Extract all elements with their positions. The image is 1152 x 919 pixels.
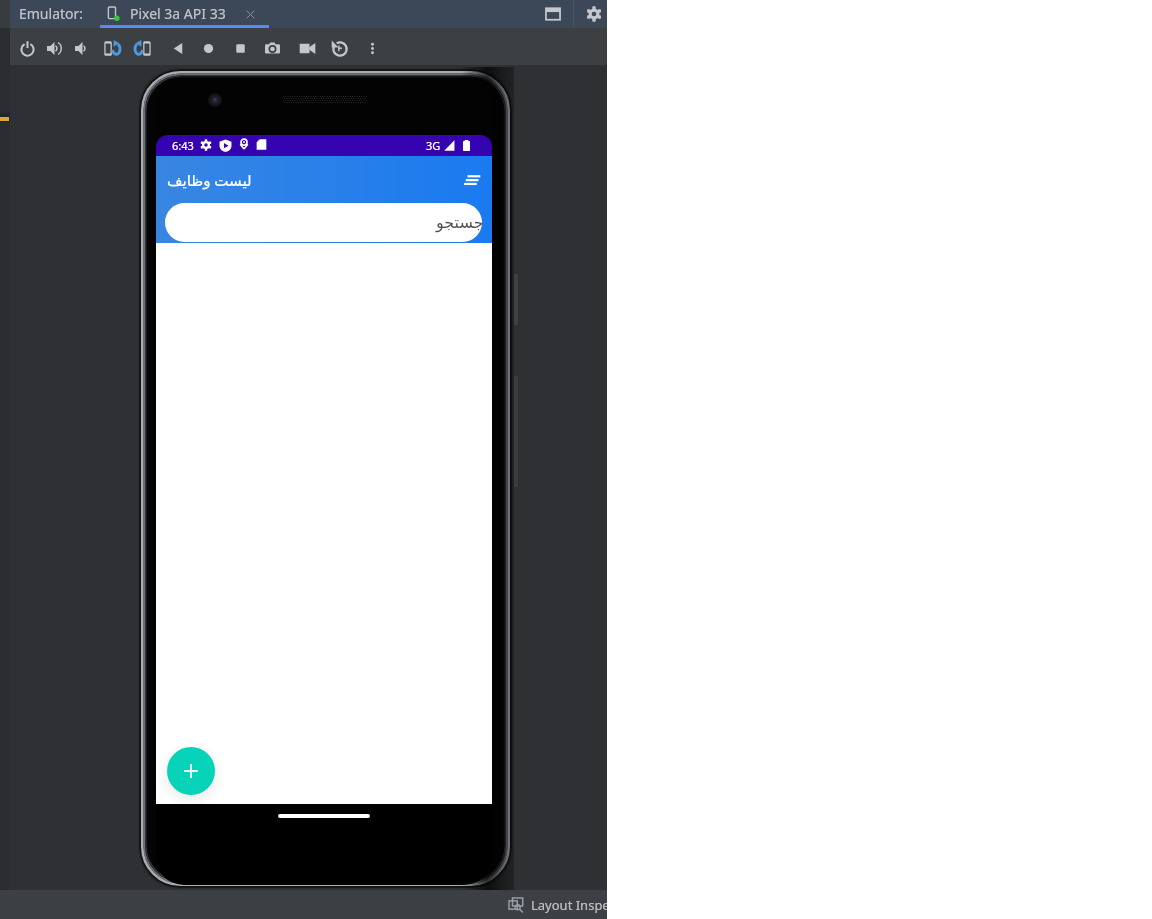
button[interactable]: Layout Inspector: [508, 894, 607, 915]
button[interactable]: لیست وظایف: [164, 162, 255, 198]
button[interactable]: Home: [195, 35, 221, 61]
staticText: 6:43: [172, 138, 194, 153]
staticText: 3G: [426, 138, 441, 153]
button[interactable]: Overview: [227, 35, 253, 61]
button[interactable]: Rotate right: [129, 35, 155, 61]
button[interactable]: Window mode: [541, 2, 565, 26]
button[interactable]: Record: [294, 35, 320, 61]
button[interactable]: More: [359, 35, 385, 61]
staticText: Pixel 3a API 33: [130, 4, 226, 23]
button[interactable]: Screenshot: [259, 35, 285, 61]
button[interactable]: Pixel 3a API 33: [90, 0, 270, 28]
button[interactable]: Rotate left: [99, 35, 125, 61]
button[interactable]: Volume down: [69, 35, 95, 61]
button[interactable]: Close tab: [241, 5, 259, 23]
button[interactable]: Snapshots: [326, 35, 352, 61]
staticText: Layout Inspector: [531, 896, 607, 914]
button[interactable]: Add task: [167, 747, 215, 795]
staticText: جستجو: [436, 213, 482, 232]
button[interactable]: Power: [14, 35, 40, 61]
button[interactable]: Settings: [582, 2, 606, 26]
staticText: لیست وظایف: [167, 170, 252, 190]
button[interactable]: Back: [165, 35, 191, 61]
button[interactable]: Volume up: [41, 35, 67, 61]
staticText: Emulator:: [19, 4, 84, 23]
button[interactable]: Sort: [456, 164, 488, 196]
button[interactable]: جستجو: [165, 203, 482, 242]
